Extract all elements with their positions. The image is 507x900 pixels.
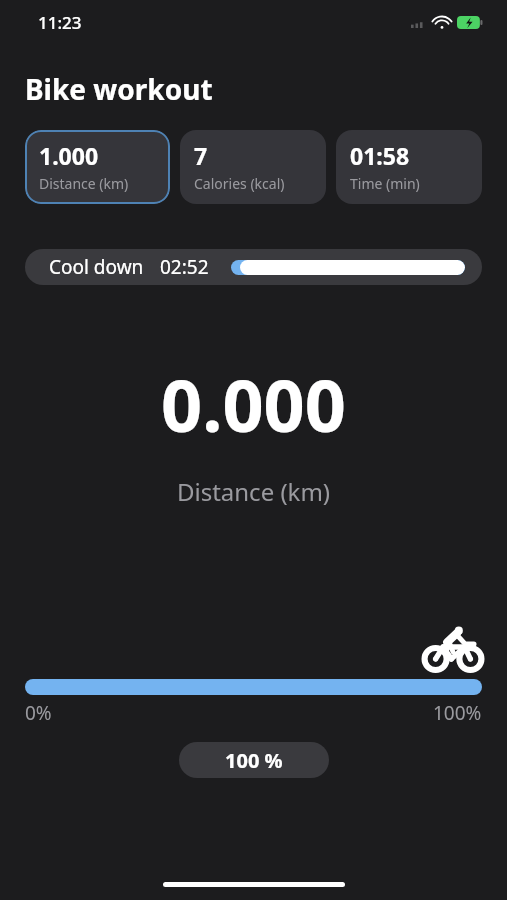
staticText: 0%: [25, 700, 52, 726]
staticText: 1.000: [39, 140, 99, 171]
other: Cycling activity: [424, 623, 482, 671]
button[interactable]: 01:58: [336, 130, 482, 204]
staticText: 0.000: [0, 355, 507, 453]
button[interactable]: 1.000: [25, 130, 170, 204]
staticText: Cool down: [49, 254, 144, 280]
staticText: 01:58: [350, 140, 410, 171]
staticText: Time (min): [350, 174, 420, 193]
button[interactable]: 7: [180, 130, 326, 204]
staticText: Bike workout: [25, 70, 213, 108]
staticText: Distance (km): [39, 174, 129, 193]
staticText: Distance (km): [0, 475, 507, 508]
button[interactable]: 100 %: [179, 742, 329, 778]
staticText: 02:52: [160, 254, 209, 280]
button[interactable]: Cool down: [25, 249, 482, 285]
staticText: 100%: [433, 700, 482, 726]
staticText: Calories (kcal): [194, 174, 285, 193]
staticText: 7: [194, 140, 208, 171]
staticText: 100 %: [225, 747, 283, 774]
staticText: 11:23: [38, 11, 82, 34]
